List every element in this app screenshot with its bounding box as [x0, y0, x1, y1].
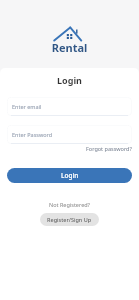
staticText: Enter Password — [12, 131, 53, 138]
staticText: Rental — [0, 40, 139, 55]
staticText: Register/Sign Up — [47, 216, 92, 223]
button[interactable]: Register/Sign Up — [40, 213, 99, 226]
staticText: Login — [61, 171, 79, 180]
button[interactable]: Forgot password? — [86, 145, 132, 152]
button[interactable]: Login — [7, 168, 132, 183]
staticText: Enter email — [12, 103, 42, 110]
button[interactable]: Enter Password — [7, 125, 132, 144]
button[interactable]: Enter email — [7, 97, 132, 116]
staticText: Not Registered? — [49, 201, 91, 208]
staticText: Login — [7, 74, 132, 86]
